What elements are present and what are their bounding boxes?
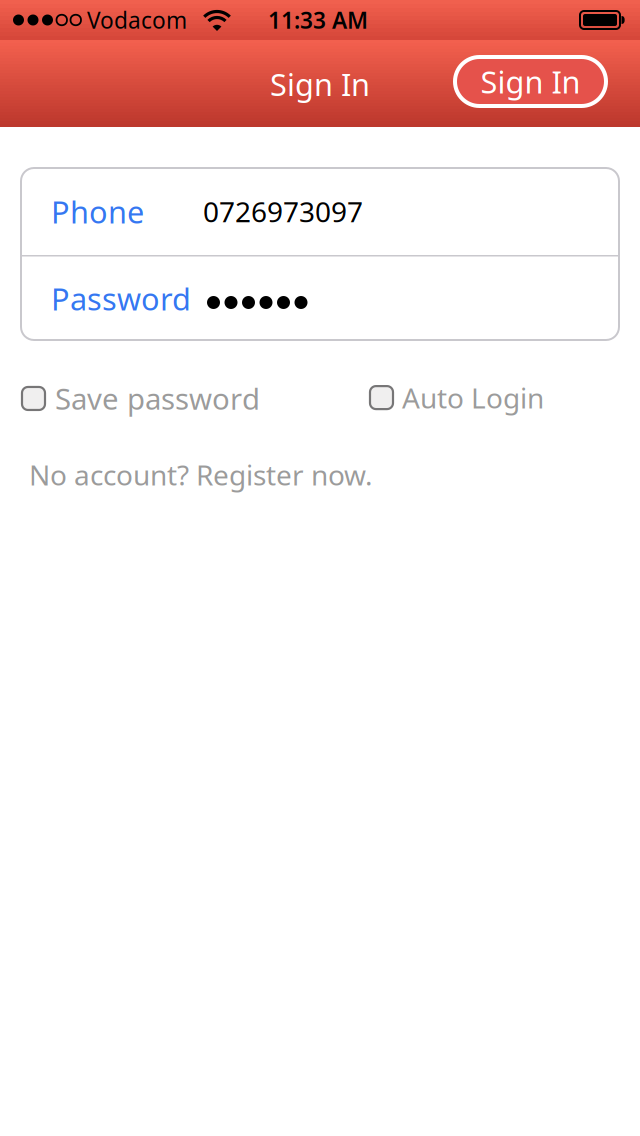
button[interactable]: Save password [22,379,260,418]
staticText: Password [51,278,191,319]
button[interactable]: Phone [21,168,619,255]
staticText: 11:33 AM [268,5,368,35]
button[interactable]: Auto Login [370,379,544,416]
staticText: Vodacom [87,5,187,35]
staticText: Sign In [270,64,370,104]
button[interactable]: Password [21,256,619,341]
staticText: Phone [51,191,144,232]
staticText: Save password [55,379,260,418]
staticText: Sign In [480,61,580,102]
staticText: Auto Login [402,379,544,416]
staticText: 0726973097 [203,193,363,230]
button[interactable]: Sign In [453,55,608,108]
staticText: No account? Register now. [29,456,373,493]
button[interactable]: No account? Register now. [29,456,373,493]
